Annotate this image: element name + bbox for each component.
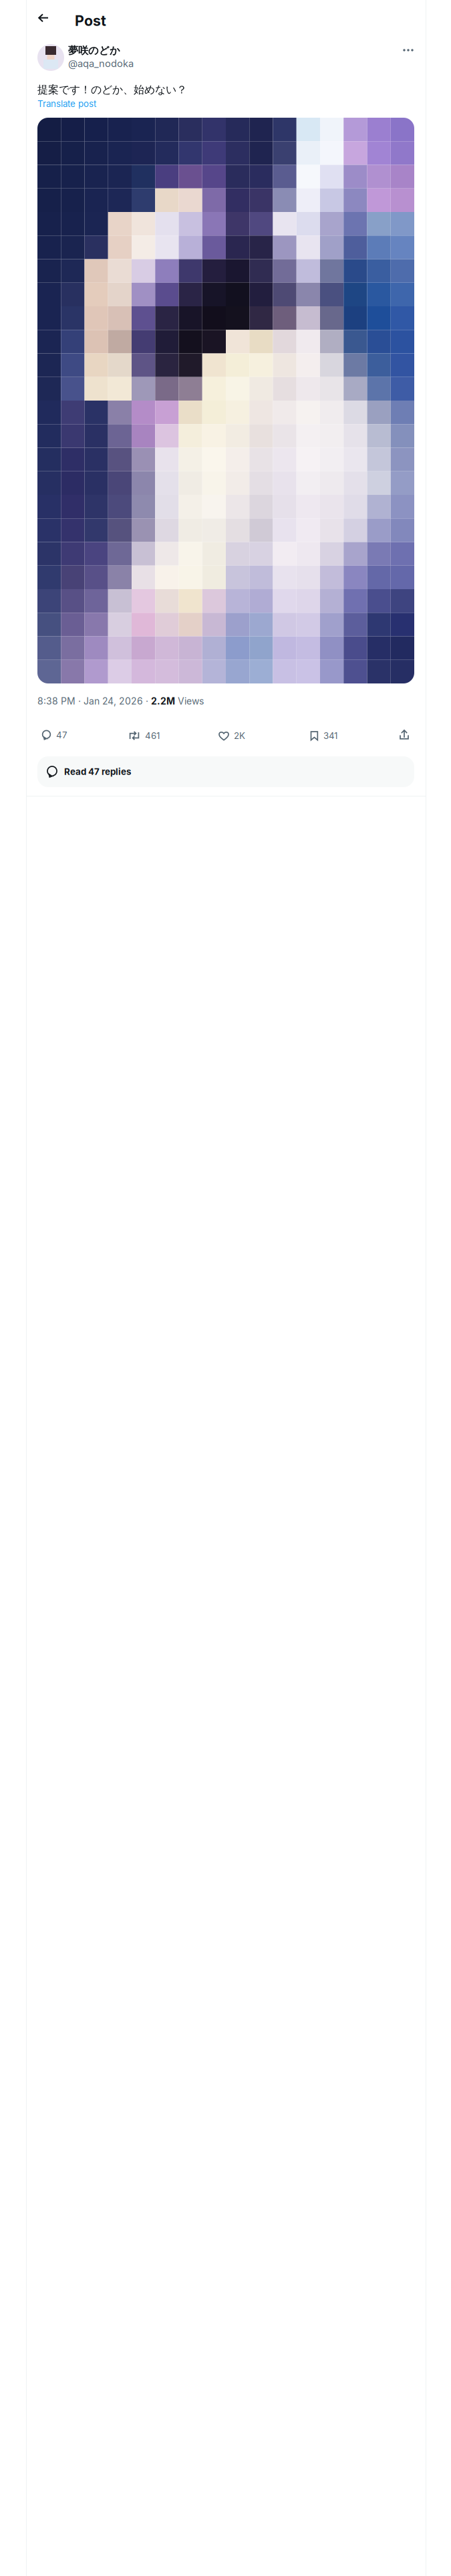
staticText: 2.2M: [151, 695, 175, 707]
button[interactable]: Read 47 replies: [37, 756, 414, 787]
staticText: Translate post: [37, 98, 96, 109]
button[interactable]: 341: [310, 730, 337, 741]
staticText: Read 47 replies: [64, 766, 131, 777]
staticText: 夢咲のどか: [68, 44, 120, 57]
button[interactable]: 2K: [218, 730, 245, 741]
staticText: 8:38 PM · Jan 24, 2026 ·: [37, 695, 151, 707]
staticText: 提案です！のどか、始めない？: [37, 83, 187, 96]
button[interactable]: 47: [41, 730, 67, 740]
button[interactable]: Translate post: [37, 98, 96, 109]
button[interactable]: 461: [128, 730, 160, 741]
staticText: 2K: [234, 730, 245, 741]
staticText: 341: [323, 730, 337, 741]
staticText: Views: [175, 695, 204, 707]
button[interactable]: Share: [400, 730, 409, 740]
staticText: 47: [56, 730, 67, 740]
staticText: 461: [145, 730, 160, 741]
staticText: @aqa_nodoka: [68, 58, 134, 69]
button[interactable]: Back: [32, 7, 55, 29]
staticText: Post: [75, 12, 106, 29]
button[interactable]: More: [400, 41, 417, 59]
